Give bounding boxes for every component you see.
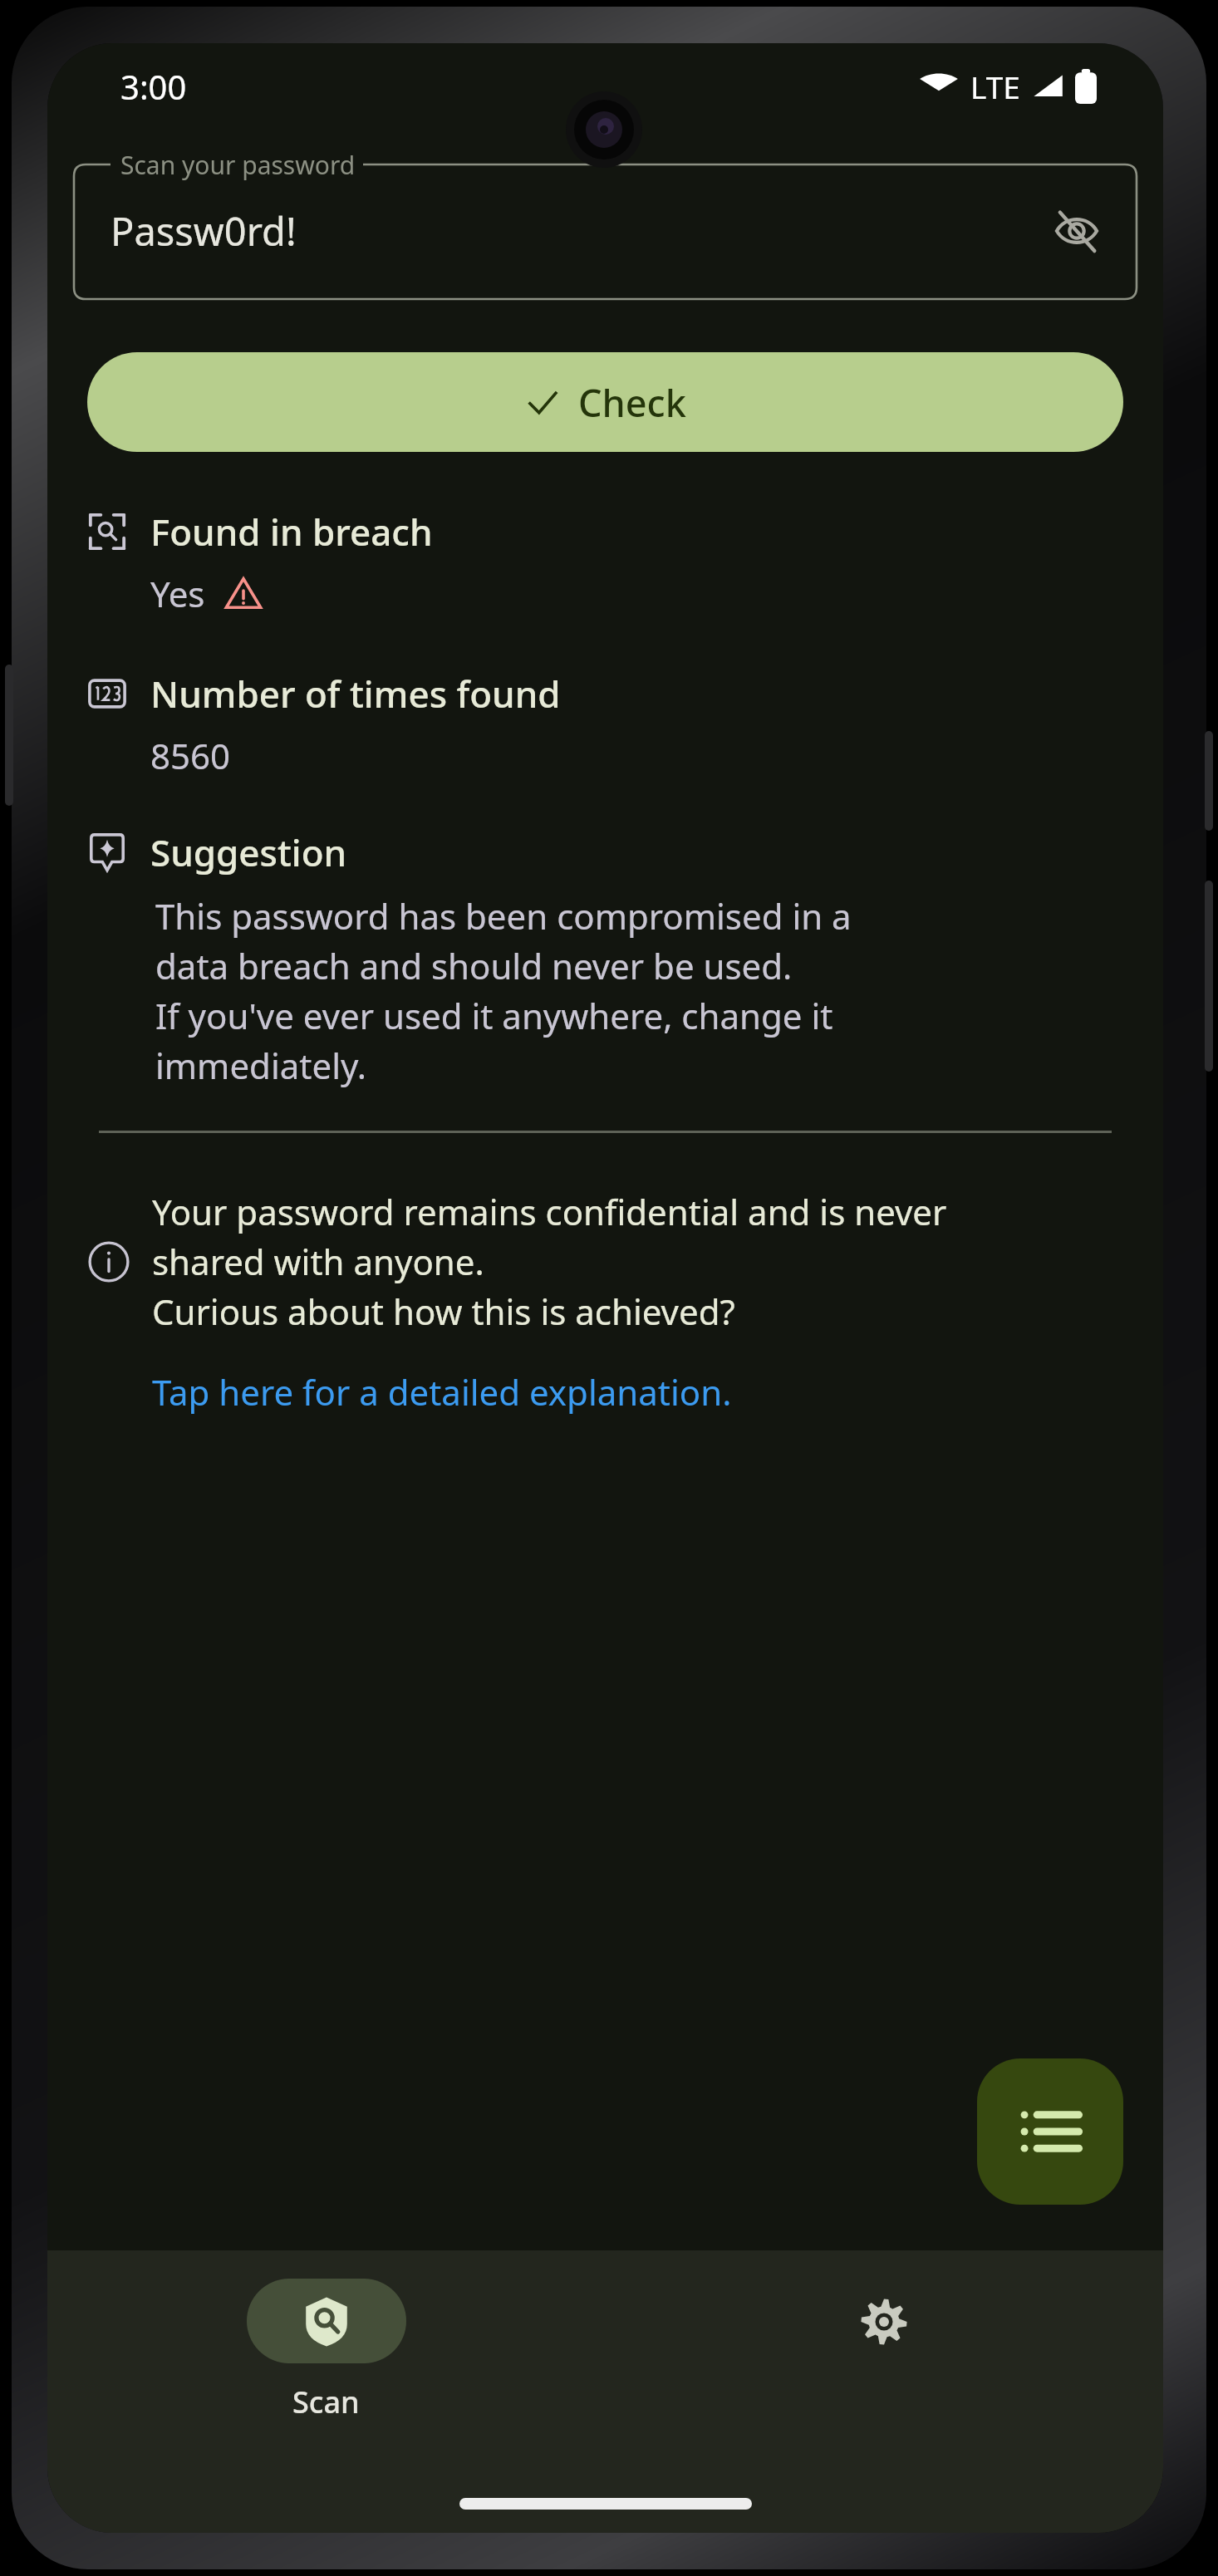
button[interactable]: Scan <box>47 2250 605 2458</box>
staticText: Tap here for a detailed explanation. <box>152 1368 732 1416</box>
staticText: This password has been compromised in a … <box>155 892 852 1089</box>
staticText: Suggestion <box>150 827 347 877</box>
button[interactable]: Tap here for a detailed explanation. <box>152 1368 732 1416</box>
staticText: Found in breach <box>150 507 433 557</box>
staticText: Scan your password <box>120 148 356 182</box>
staticText: 3:00 <box>120 64 187 109</box>
staticText: 8560 <box>150 732 231 779</box>
button[interactable]: Settings <box>605 2250 1163 2458</box>
staticText: LTE <box>970 66 1020 107</box>
button[interactable]: Hide password <box>1037 191 1117 271</box>
button[interactable]: History list <box>977 2058 1123 2205</box>
button[interactable]: Check <box>87 352 1123 452</box>
staticText: Your password remains confidential and i… <box>152 1188 947 1335</box>
staticText: Passw0rd! <box>111 204 297 258</box>
staticText: Check <box>578 377 686 428</box>
staticText: Scan <box>292 2382 360 2422</box>
staticText: Number of times found <box>150 669 561 719</box>
staticText: Yes <box>150 570 205 617</box>
